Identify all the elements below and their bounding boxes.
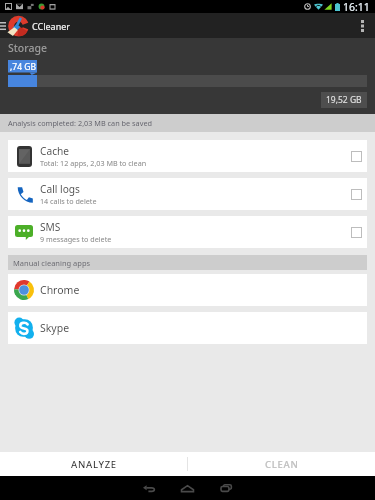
staticText: Cache [40, 144, 70, 158]
staticText: Analysis completed: 2,03 MB can be saved [8, 118, 152, 128]
staticText: Chrome [40, 283, 80, 297]
button[interactable]: More options [349, 13, 375, 38]
staticText: 14 calls to delete [40, 196, 97, 206]
button[interactable]: ANALYZE [0, 452, 187, 476]
button[interactable]: Chrome [8, 274, 367, 306]
staticText: SMS [40, 220, 61, 234]
staticText: Storage [8, 41, 47, 55]
staticText: Skype [40, 321, 70, 335]
staticText: Call logs [40, 182, 80, 196]
staticText: ,74 GB [10, 61, 36, 73]
button[interactable]: Recent apps [207, 476, 246, 500]
staticText: Total: 12 apps, 2,03 MB to clean [40, 158, 147, 168]
button[interactable]: CLEAN [188, 452, 375, 476]
button[interactable]: Open navigation drawer [0, 13, 7, 38]
button[interactable]: Cache [8, 140, 367, 172]
button[interactable]: Call logs [8, 178, 367, 210]
button[interactable]: Skype [8, 312, 367, 344]
staticText: 9 messages to delete [40, 234, 112, 244]
staticText: ANALYZE [71, 458, 117, 471]
staticText: CLEAN [265, 458, 299, 471]
staticText: Manual cleaning apps [13, 258, 91, 268]
button[interactable]: Home [168, 476, 207, 500]
button[interactable]: Back [129, 476, 168, 500]
staticText: CCleaner [32, 20, 70, 32]
staticText: 16:11 [343, 0, 370, 13]
button[interactable]: SMS [8, 216, 367, 248]
staticText: 19,52 GB [326, 94, 362, 106]
